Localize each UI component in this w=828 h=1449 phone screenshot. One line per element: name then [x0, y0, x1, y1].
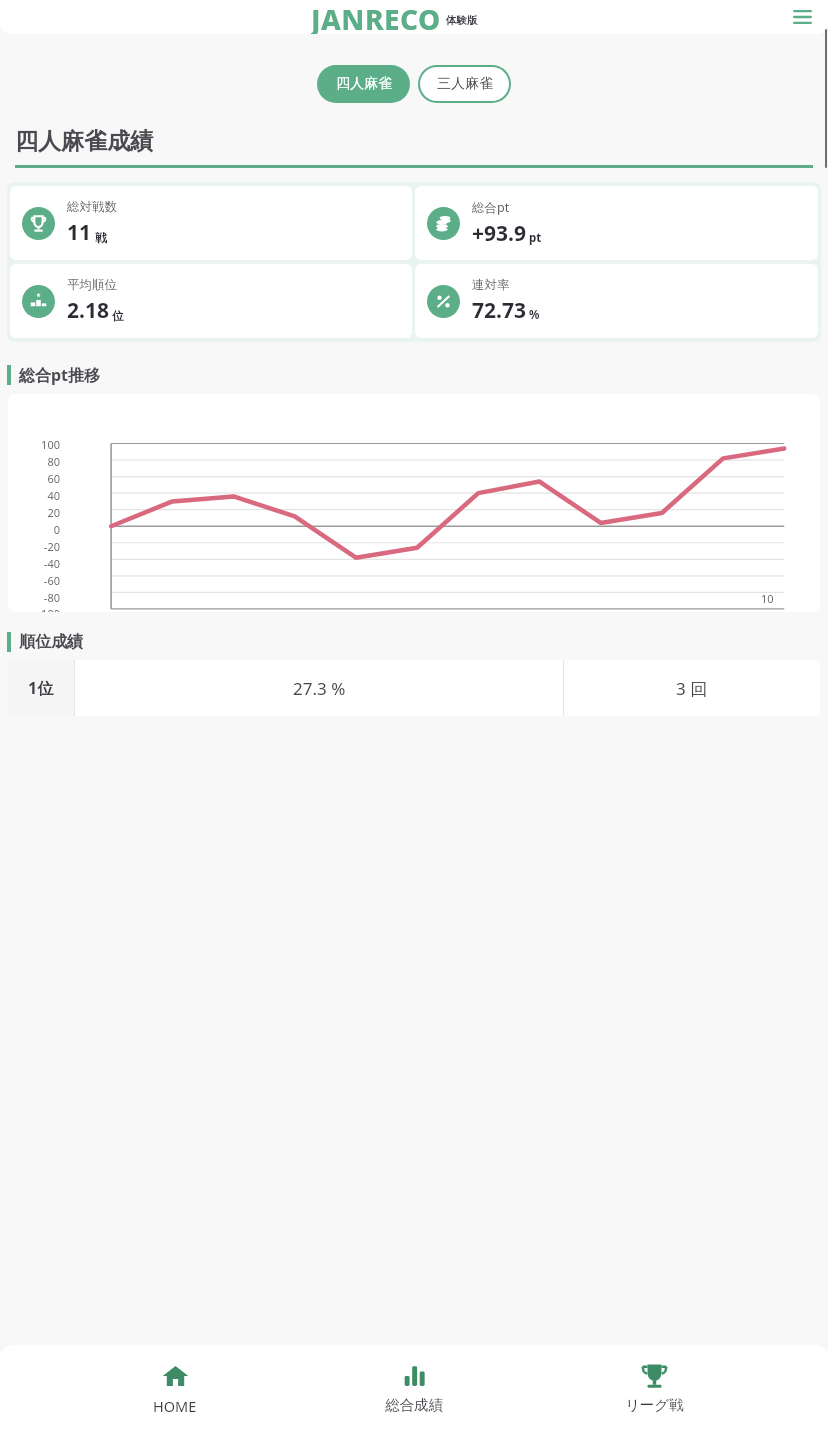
button[interactable]: リーグ戦	[589, 1361, 719, 1414]
staticText: リーグ戦	[625, 1396, 684, 1414]
staticText: 総合pt推移	[19, 364, 101, 386]
staticText: 20	[47, 505, 60, 520]
staticText: -20	[43, 539, 60, 554]
staticText: pt	[529, 230, 542, 246]
staticText: HOME	[153, 1396, 197, 1416]
staticText: 戦	[95, 231, 107, 245]
staticText: 連対率	[472, 277, 510, 293]
staticText: 27.3 %	[293, 677, 346, 700]
staticText: 位	[112, 309, 124, 323]
staticText: 三人麻雀	[437, 75, 493, 93]
staticText: JANRECO	[311, 0, 441, 34]
button[interactable]: 三人麻雀	[420, 67, 509, 101]
staticText: 80	[47, 454, 60, 469]
staticText: -60	[43, 573, 60, 588]
staticText: 100	[41, 437, 60, 452]
button[interactable]: 平均順位	[10, 264, 412, 338]
staticText: 60	[47, 471, 60, 486]
staticText: 2.18	[67, 296, 109, 325]
staticText: 平均順位	[67, 277, 117, 293]
staticText: 1位	[28, 677, 54, 699]
staticText: 四人麻雀成績	[15, 127, 153, 156]
staticText: 40	[47, 488, 60, 503]
button[interactable]: Menu	[789, 4, 815, 30]
staticText: 11	[67, 218, 92, 247]
button[interactable]: 総合pt	[415, 186, 818, 260]
staticText: +93.9	[472, 219, 526, 248]
staticText: 0	[53, 522, 60, 537]
staticText: 総対戦数	[67, 199, 117, 215]
button[interactable]: 1位	[8, 660, 820, 716]
staticText: 総合pt	[472, 199, 510, 216]
button[interactable]: HOME	[110, 1361, 240, 1416]
staticText: 72.73	[472, 296, 526, 325]
staticText: %	[529, 307, 540, 323]
staticText: -100	[37, 606, 60, 612]
staticText: 総合成績	[385, 1396, 443, 1414]
staticText: 体験版	[446, 14, 478, 27]
staticText: 順位成績	[19, 632, 83, 652]
button[interactable]: 連対率	[415, 264, 818, 338]
staticText: -40	[43, 556, 60, 571]
button[interactable]: 総対戦数	[10, 186, 412, 260]
staticText: -80	[43, 590, 60, 605]
button[interactable]: 総合成績	[349, 1361, 479, 1414]
staticText: 3 回	[676, 677, 708, 700]
staticText: 10	[761, 591, 774, 606]
staticText: 四人麻雀	[336, 75, 392, 93]
button[interactable]: 四人麻雀	[317, 65, 410, 103]
